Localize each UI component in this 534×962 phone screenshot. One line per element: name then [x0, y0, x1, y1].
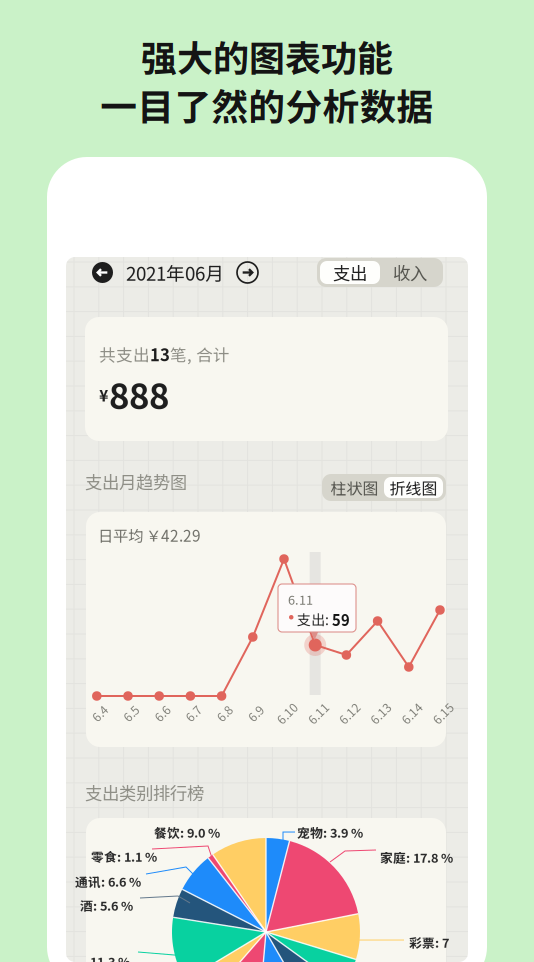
staticText: 2021年06月: [126, 259, 224, 286]
staticText: 酒: 5.6 %: [80, 896, 133, 914]
staticText: 笔, 合计: [170, 342, 230, 366]
button[interactable]: 收入: [380, 261, 440, 284]
staticText: 6.6: [154, 704, 171, 722]
staticText: 共支出: [99, 342, 150, 366]
staticText: 6.7: [185, 704, 202, 722]
staticText: 6.12: [337, 704, 361, 722]
staticText: 6.14: [400, 704, 424, 722]
button[interactable]: 柱状图: [325, 477, 384, 498]
staticText: 6.11: [306, 704, 330, 722]
staticText: 888: [109, 369, 169, 419]
staticText: 日平均 ￥42.29: [98, 524, 201, 546]
staticText: 支出月趋势图: [85, 469, 187, 494]
staticText: 一目了然的分析数据: [100, 78, 433, 131]
button[interactable]: Previous month: [92, 262, 113, 283]
staticText: 支出类别排行榜: [85, 780, 204, 805]
staticText: 11.3 %: [90, 952, 130, 962]
staticText: 13: [150, 342, 170, 366]
staticText: 宠物: 3.9 %: [297, 823, 363, 841]
staticText: 强大的图表功能: [141, 30, 393, 82]
staticText: 6.4: [91, 704, 108, 722]
staticText: 6.9: [247, 704, 264, 722]
button[interactable]: 2021年06月: [126, 259, 224, 286]
staticText: 零食: 1.1 %: [91, 847, 157, 865]
button[interactable]: 折线图: [384, 477, 443, 498]
staticText: 6.8: [216, 704, 233, 722]
staticText: 柱状图: [330, 476, 378, 499]
staticText: 6.13: [369, 704, 393, 722]
staticText: 餐饮: 9.0 %: [154, 823, 220, 841]
staticText: 6.11: [288, 590, 313, 608]
staticText: 收入: [393, 260, 427, 285]
staticText: 支出: [333, 260, 367, 285]
staticText: 6.10: [275, 704, 299, 722]
staticText: ¥: [99, 383, 108, 406]
button[interactable]: 支出: [320, 261, 380, 284]
staticText: 通讯: 6.6 %: [75, 872, 141, 890]
staticText: 6.5: [122, 704, 139, 722]
staticText: 折线图: [389, 476, 437, 499]
button[interactable]: Next month: [237, 262, 258, 283]
staticText: 彩票: 7: [409, 933, 449, 951]
staticText: 59: [332, 609, 350, 630]
staticText: 6.15: [431, 704, 455, 722]
staticText: 家庭: 17.8 %: [380, 848, 453, 866]
staticText: 支出:: [297, 609, 329, 629]
